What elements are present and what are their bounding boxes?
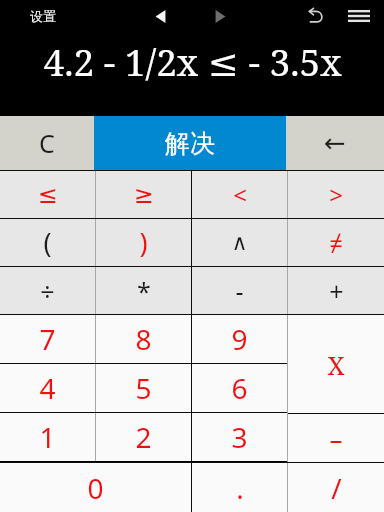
staticText: ÷ xyxy=(40,274,55,308)
button[interactable]: Next xyxy=(206,2,234,30)
button[interactable]: 1 xyxy=(0,413,95,461)
button[interactable]: 9 xyxy=(192,315,287,363)
staticText: . xyxy=(236,469,244,507)
staticText: 3 xyxy=(231,418,248,456)
staticText: 8 xyxy=(135,320,152,358)
staticText: ≠ xyxy=(329,226,343,259)
staticText: + xyxy=(329,274,344,308)
button[interactable]: ÷ xyxy=(0,267,95,314)
button[interactable]: ∧ xyxy=(192,219,287,266)
staticText: ← xyxy=(324,128,346,158)
staticText: / xyxy=(331,469,342,507)
staticText: 1 xyxy=(39,418,56,456)
button[interactable]: < xyxy=(192,171,287,218)
button[interactable]: 7 xyxy=(0,315,95,363)
button[interactable]: ( xyxy=(0,219,95,266)
button[interactable]: Previous xyxy=(146,2,174,30)
button[interactable]: ≥ xyxy=(96,171,191,218)
button[interactable]: . xyxy=(192,463,287,512)
button[interactable]: 0 xyxy=(0,463,191,512)
staticText: 4.2 - 1/2x ≤ - 3.5x xyxy=(43,36,342,86)
button[interactable]: > xyxy=(288,171,384,218)
button[interactable]: * xyxy=(96,267,191,314)
button[interactable]: ≠ xyxy=(288,219,384,266)
button[interactable]: 解决 xyxy=(94,116,286,170)
staticText: ≥ xyxy=(133,181,154,209)
button[interactable]: ≤ xyxy=(0,171,95,218)
staticText: X xyxy=(327,347,345,382)
button[interactable]: 4 xyxy=(0,364,95,412)
button[interactable]: - xyxy=(192,267,287,314)
button[interactable]: C xyxy=(0,116,94,170)
staticText: ( xyxy=(43,224,52,261)
button[interactable]: 2 xyxy=(96,413,191,461)
button[interactable]: X xyxy=(288,315,384,413)
staticText: < xyxy=(233,178,247,211)
button[interactable]: 3 xyxy=(192,413,287,461)
button[interactable]: 6 xyxy=(192,364,287,412)
staticText: ) xyxy=(139,224,148,261)
staticText: 解决 xyxy=(165,128,215,159)
staticText: 6 xyxy=(231,369,248,407)
button[interactable]: Backspace xyxy=(286,116,384,170)
button[interactable]: 5 xyxy=(96,364,191,412)
staticText: - xyxy=(235,274,244,308)
staticText: 4 xyxy=(39,369,56,407)
button[interactable]: Undo xyxy=(300,1,330,31)
staticText: > xyxy=(329,178,343,211)
button[interactable]: 8 xyxy=(96,315,191,363)
staticText: 0 xyxy=(87,469,104,507)
staticText: ≤ xyxy=(37,181,58,209)
button[interactable]: – xyxy=(288,414,384,462)
staticText: * xyxy=(137,274,151,308)
staticText: 设置 xyxy=(30,8,56,24)
button[interactable]: 设置 xyxy=(30,8,56,24)
staticText: C xyxy=(39,126,55,160)
staticText: 7 xyxy=(39,320,56,358)
button[interactable]: + xyxy=(288,267,384,314)
staticText: ∧ xyxy=(231,230,248,256)
staticText: 5 xyxy=(135,369,152,407)
staticText: 2 xyxy=(135,418,152,456)
button[interactable]: / xyxy=(288,463,384,512)
staticText: – xyxy=(329,421,343,456)
staticText: 9 xyxy=(231,320,248,358)
button[interactable]: Menu xyxy=(342,0,376,32)
button[interactable]: ) xyxy=(96,219,191,266)
